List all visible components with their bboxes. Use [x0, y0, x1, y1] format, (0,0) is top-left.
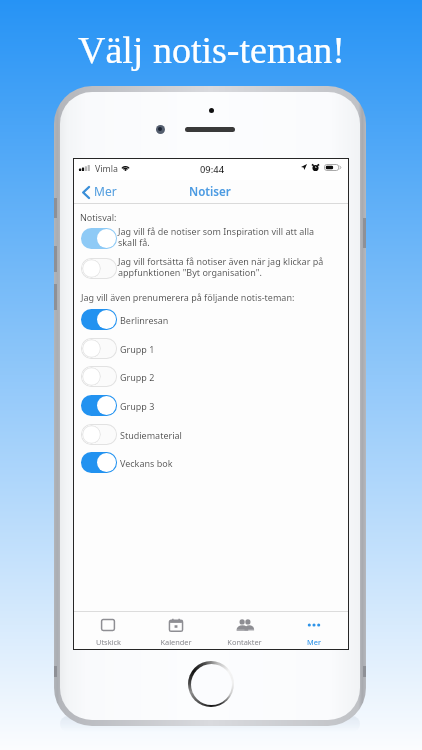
staticText: Välj notis-teman!: [78, 29, 345, 71]
button[interactable]: Kalender: [142, 611, 210, 649]
button[interactable]: Veckans bok: [74, 449, 348, 477]
staticText: Mer: [307, 637, 321, 647]
staticText: Grupp 1: [120, 343, 155, 355]
staticText: Jag vill fortsätta få notiser även när j…: [118, 255, 324, 279]
button[interactable]: Mer: [77, 180, 125, 204]
button[interactable]: Mer: [279, 611, 348, 649]
staticText: Grupp 2: [120, 371, 155, 383]
staticText: Kontakter: [227, 637, 262, 647]
button[interactable]: Grupp 1: [74, 335, 348, 363]
staticText: Kalender: [160, 637, 192, 647]
button[interactable]: Berlinresan: [74, 306, 348, 334]
staticText: Notiser: [189, 184, 231, 200]
button[interactable]: Grupp 3: [74, 392, 348, 420]
button[interactable]: Studiematerial: [74, 421, 348, 449]
button[interactable]: Utskick: [74, 611, 142, 649]
staticText: Vimla: [95, 163, 118, 175]
staticText: Jag vill få de notiser som Inspiration v…: [118, 225, 315, 249]
button[interactable]: Jag vill fortsätta få notiser även när j…: [74, 255, 348, 283]
staticText: Mer: [94, 183, 117, 199]
staticText: Utskick: [96, 637, 121, 647]
button[interactable]: Jag vill få de notiser som Inspiration v…: [74, 225, 348, 253]
button[interactable]: Kontakter: [210, 611, 279, 649]
staticText: Studiematerial: [120, 429, 182, 441]
staticText: Grupp 3: [120, 400, 155, 412]
button[interactable]: Grupp 2: [74, 363, 348, 391]
staticText: Jag vill även prenumerera på följande no…: [81, 291, 295, 303]
staticText: Notisval:: [80, 211, 117, 223]
staticText: Veckans bok: [120, 457, 173, 469]
staticText: Berlinresan: [120, 314, 169, 326]
staticText: 09:44: [200, 163, 225, 176]
